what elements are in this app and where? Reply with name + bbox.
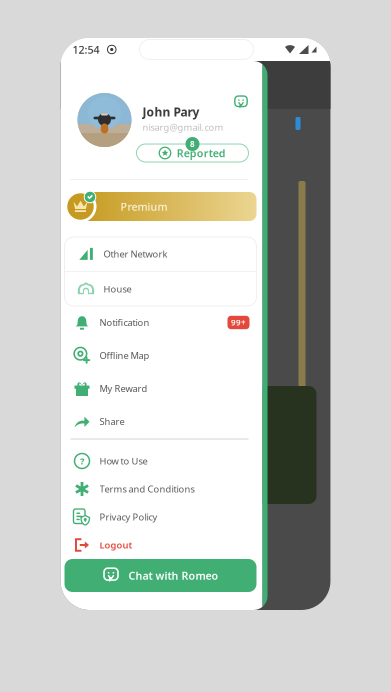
staticText: Premium: [120, 199, 167, 214]
staticText: 99+: [231, 317, 246, 328]
button[interactable]: Premium: [64, 190, 256, 223]
button[interactable]: Edit profile: [233, 93, 248, 110]
button[interactable]: Share: [60, 405, 262, 438]
button[interactable]: Notification: [60, 306, 262, 339]
button[interactable]: Other Network: [64, 237, 256, 271]
staticText: Chat with Romeo: [128, 568, 218, 583]
staticText: Share: [99, 415, 124, 428]
button[interactable]: Reported: [136, 144, 248, 162]
staticText: My Reward: [99, 382, 147, 395]
button[interactable]: Chat with Romeo: [64, 559, 256, 592]
staticText: Terms and Conditions: [99, 483, 194, 495]
button[interactable]: Logout: [60, 531, 262, 559]
staticText: Offline Map: [99, 349, 149, 362]
button[interactable]: ?: [60, 447, 262, 475]
staticText: John Pary: [142, 104, 199, 120]
staticText: Other Network: [103, 248, 167, 260]
button[interactable]: Offline Map: [60, 339, 262, 372]
staticText: How to Use: [99, 455, 147, 467]
button[interactable]: House: [64, 272, 256, 306]
staticText: Reported: [177, 146, 226, 160]
button[interactable]: My Reward: [60, 372, 262, 405]
staticText: 8: [190, 139, 195, 149]
staticText: Logout: [99, 539, 132, 551]
button[interactable]: Privacy Policy: [60, 503, 262, 531]
staticText: ?: [80, 455, 84, 467]
button[interactable]: Terms and Conditions: [60, 475, 262, 503]
staticText: nisarg@gmail.com: [142, 121, 223, 133]
staticText: House: [103, 283, 131, 295]
staticText: Notification: [99, 316, 149, 329]
staticText: Privacy Policy: [99, 511, 157, 523]
staticText: 12:54: [72, 42, 99, 57]
